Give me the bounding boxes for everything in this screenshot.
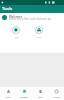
button[interactable]: Eszköz	[16, 87, 32, 98]
staticText: Welcome	[9, 15, 23, 19]
staticText: Select one of the tools below to go	[9, 17, 51, 21]
button[interactable]: Call	[7, 26, 25, 38]
staticText: Call	[14, 35, 19, 38]
staticText: Eszköz	[20, 95, 28, 98]
staticText: Továb	[53, 95, 60, 98]
staticText: Bolt	[38, 95, 43, 98]
button[interactable]: Fiók	[0, 87, 16, 98]
staticText: Fiók	[6, 95, 11, 98]
button[interactable]: Bolt	[32, 87, 48, 98]
button[interactable]: Print	[30, 26, 48, 38]
staticText: Print	[36, 35, 42, 38]
staticText: Tools	[2, 6, 13, 12]
button[interactable]: Továb	[48, 87, 64, 98]
